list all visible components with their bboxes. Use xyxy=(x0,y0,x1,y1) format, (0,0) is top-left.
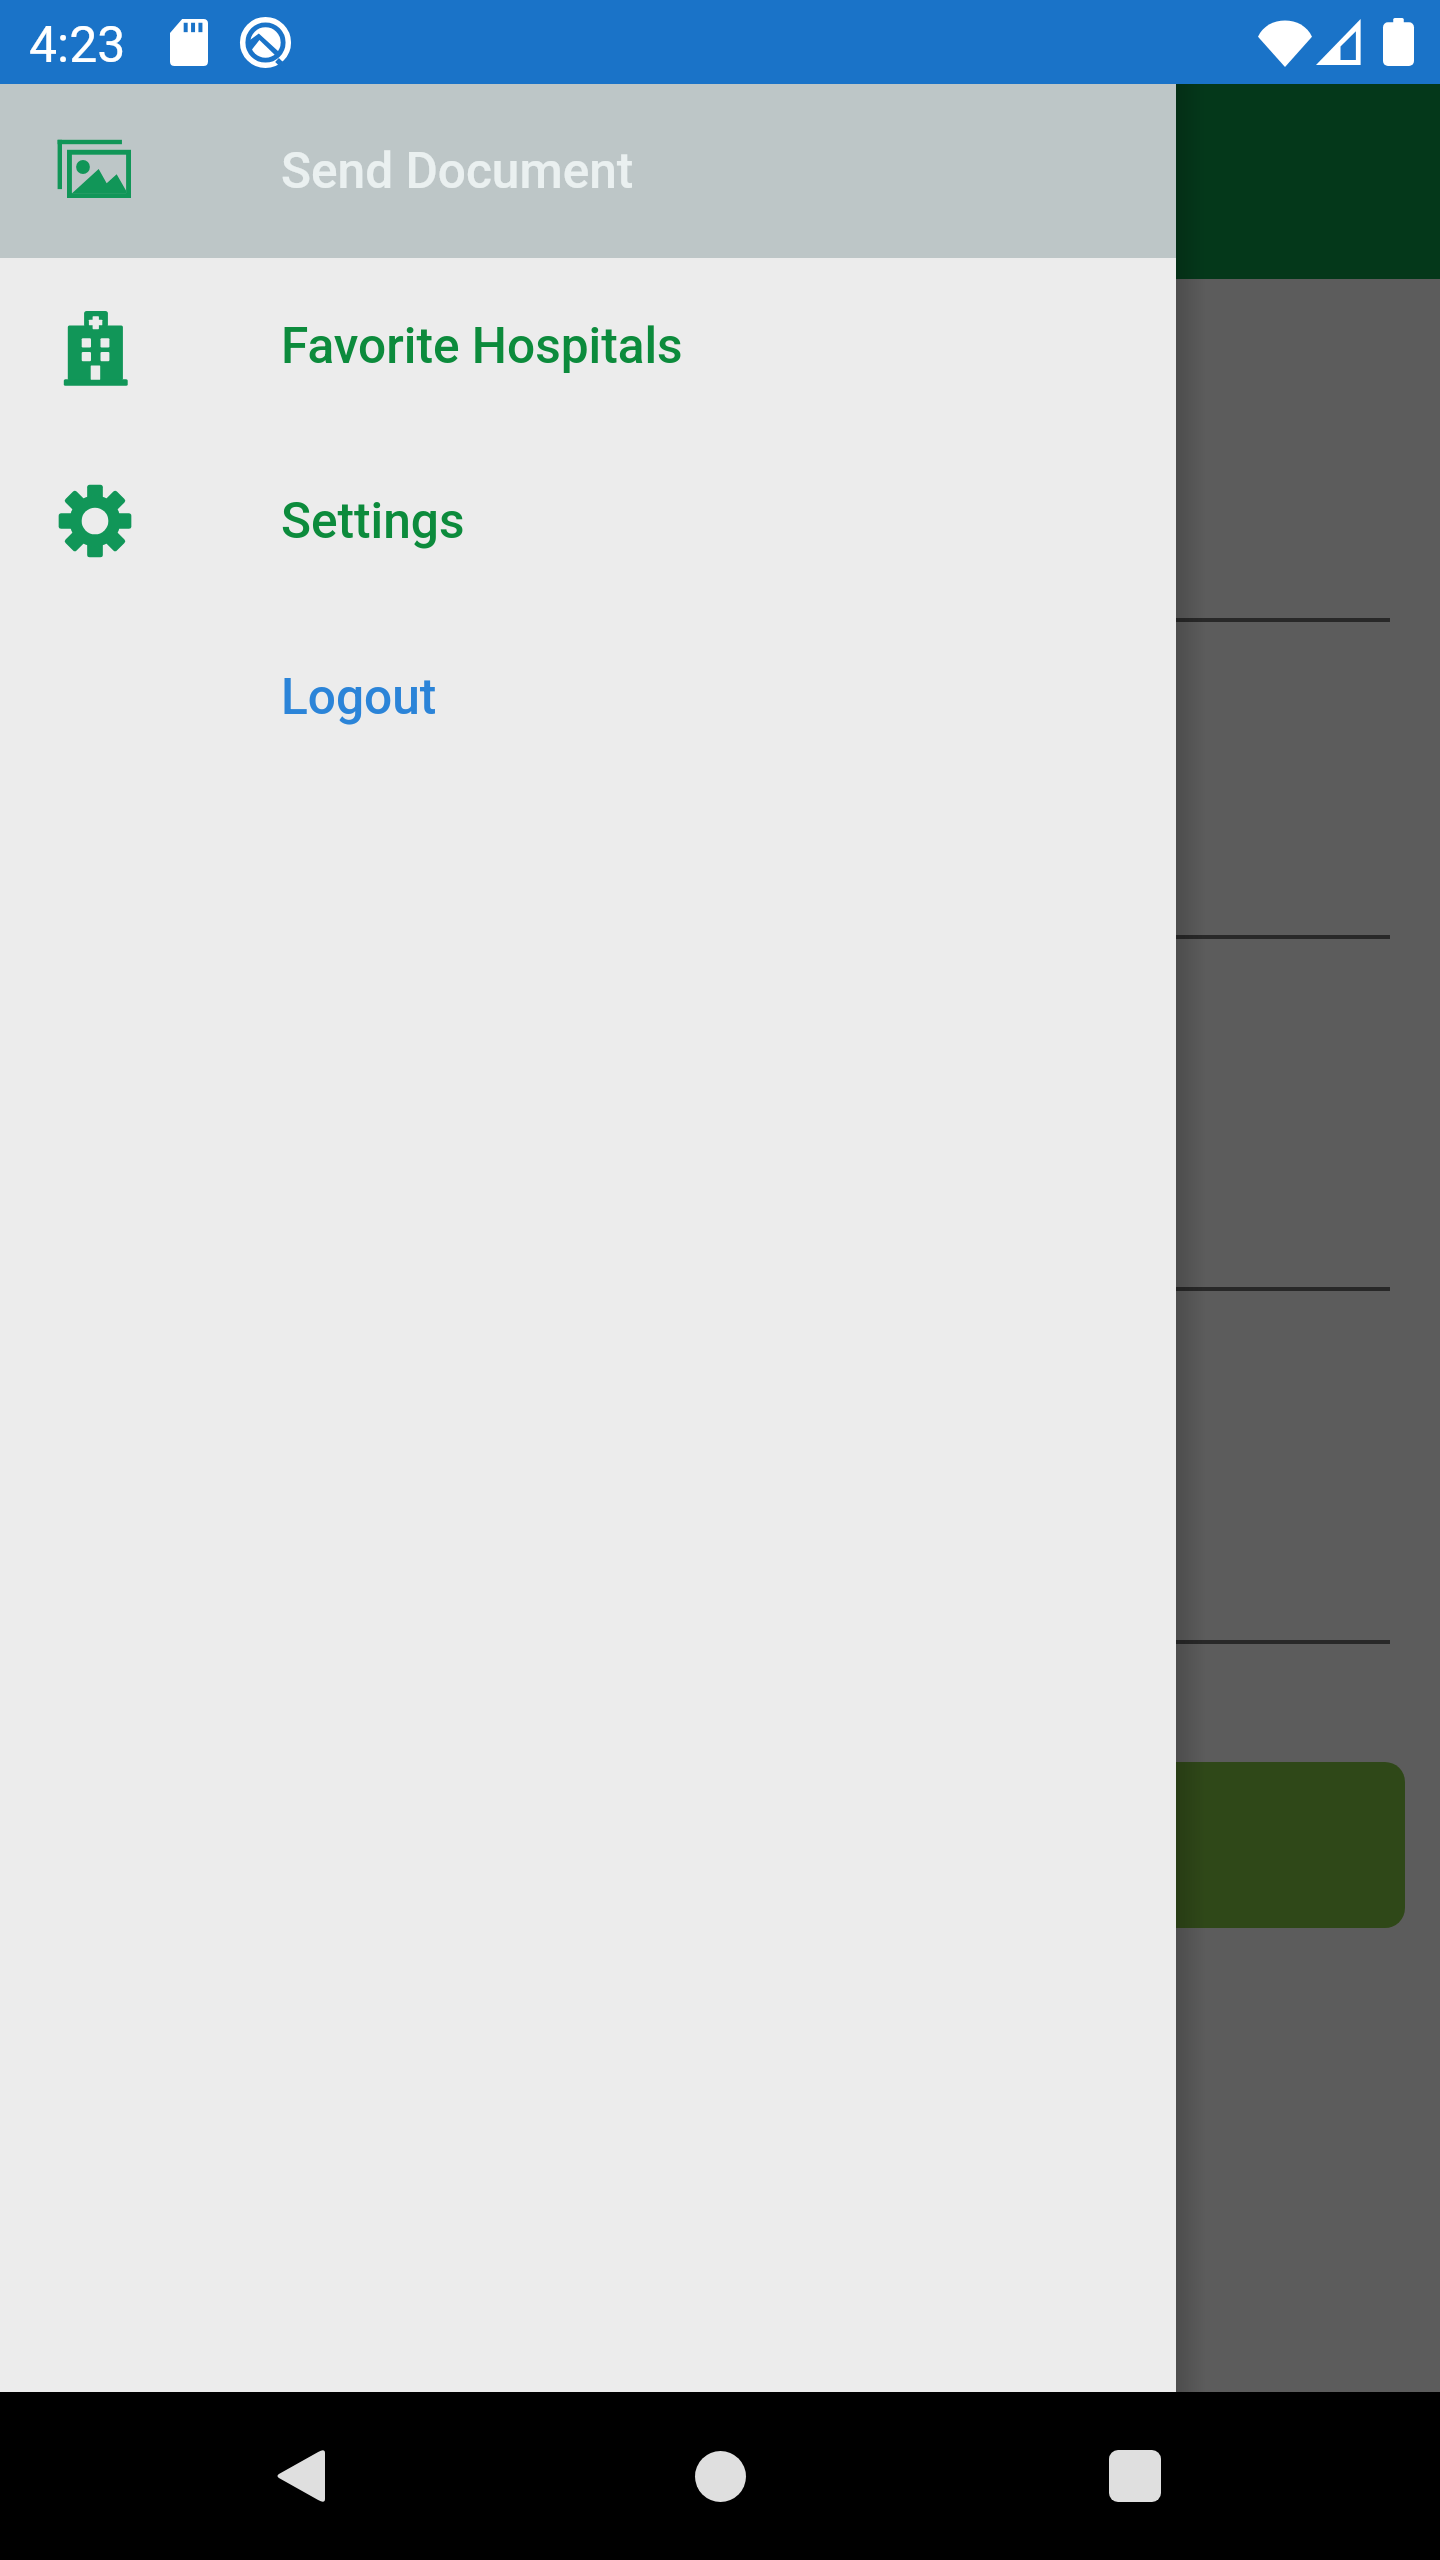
button[interactable]: Submit xyxy=(60,1762,1405,1928)
button[interactable]: Home xyxy=(624,2392,816,2560)
button[interactable]: Recent apps xyxy=(1039,2392,1231,2560)
button[interactable]: Favorite Hospitals xyxy=(0,258,1176,433)
button[interactable]: Back xyxy=(204,2392,396,2560)
button[interactable]: Settings xyxy=(0,433,1176,609)
button[interactable]: Logout xyxy=(0,609,1176,785)
staticText: Favorite Hospitals xyxy=(281,317,683,375)
button[interactable]: Send Document xyxy=(0,84,1176,258)
staticText: Send Document xyxy=(281,142,634,200)
staticText: Settings xyxy=(281,492,465,550)
staticText: Logout xyxy=(281,668,437,726)
staticText: 4:23 xyxy=(29,16,126,75)
